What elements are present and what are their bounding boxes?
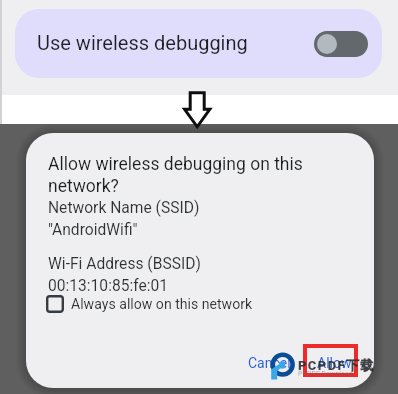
staticText: PCPDF Download [298, 370, 353, 378]
staticText: Always allow on this network [71, 296, 253, 313]
button[interactable]: Use wireless debugging [15, 9, 382, 78]
button[interactable]: Cancel [240, 350, 299, 376]
staticText: Network Name (SSID) "AndroidWifi" [48, 199, 200, 238]
staticText: Wi-Fi Address (BSSID) 00:13:10:85:fe:01 [48, 255, 201, 294]
staticText: PCPDF下载 [298, 357, 375, 373]
staticText: Use wireless debugging [37, 31, 248, 54]
button[interactable]: Toggle wireless debugging [314, 31, 368, 57]
button[interactable]: Allow [309, 350, 360, 376]
staticText: Cancel [248, 355, 291, 371]
staticText: Allow [317, 355, 352, 371]
button[interactable]: Always allow on this network [46, 295, 253, 313]
staticText: Allow wireless debugging on this network… [48, 154, 303, 196]
